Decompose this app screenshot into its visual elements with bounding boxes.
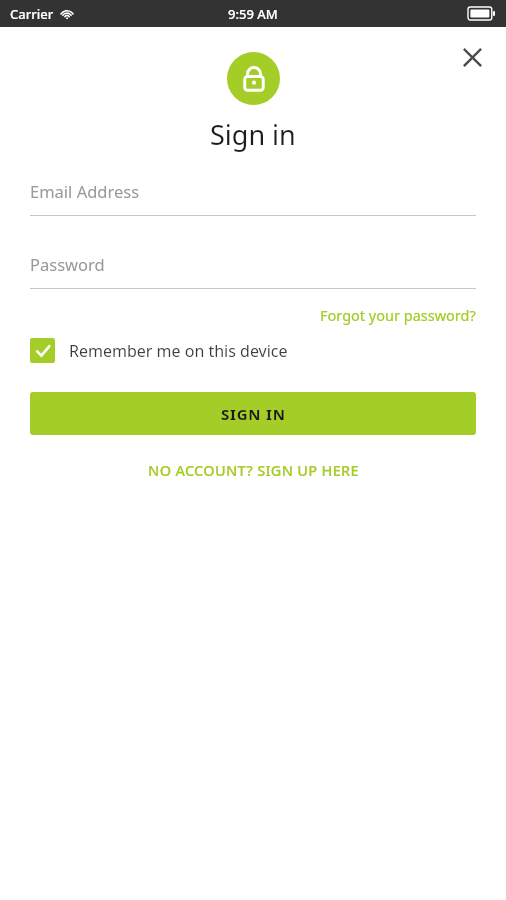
button[interactable]: Remember me on this device [30, 338, 476, 363]
button[interactable]: NO ACCOUNT? SIGN UP HERE [136, 456, 371, 484]
staticText: Sign in [210, 116, 296, 153]
staticText: Password [30, 253, 105, 275]
button[interactable]: Email Address [30, 180, 476, 216]
staticText: Forgot your password? [320, 305, 476, 325]
button[interactable]: SIGN IN [30, 392, 476, 435]
staticText: 9:59 AM [228, 5, 278, 23]
staticText: Carrier [10, 5, 54, 23]
staticText: Remember me on this device [69, 340, 288, 362]
staticText: NO ACCOUNT? SIGN UP HERE [148, 460, 359, 480]
staticText: SIGN IN [221, 404, 286, 424]
staticText: Email Address [30, 180, 140, 202]
button[interactable]: Password [30, 253, 476, 289]
button[interactable]: Forgot your password? [320, 303, 476, 327]
button[interactable]: Close [450, 35, 494, 79]
